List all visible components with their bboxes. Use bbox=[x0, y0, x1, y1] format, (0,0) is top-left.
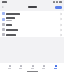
button[interactable]: Library bbox=[30, 65, 35, 69]
button[interactable]: Home bbox=[7, 65, 12, 69]
button[interactable]: Activity bbox=[41, 65, 46, 69]
button[interactable] bbox=[0, 32, 64, 37]
button[interactable] bbox=[0, 22, 64, 27]
button[interactable] bbox=[0, 27, 64, 32]
button[interactable]: Back bbox=[2, 6, 4, 8]
button[interactable]: Add bbox=[55, 6, 62, 9]
button[interactable]: Profile bbox=[53, 65, 58, 69]
button[interactable]: Search bbox=[18, 65, 23, 69]
button[interactable] bbox=[0, 16, 64, 22]
button[interactable] bbox=[0, 11, 64, 16]
